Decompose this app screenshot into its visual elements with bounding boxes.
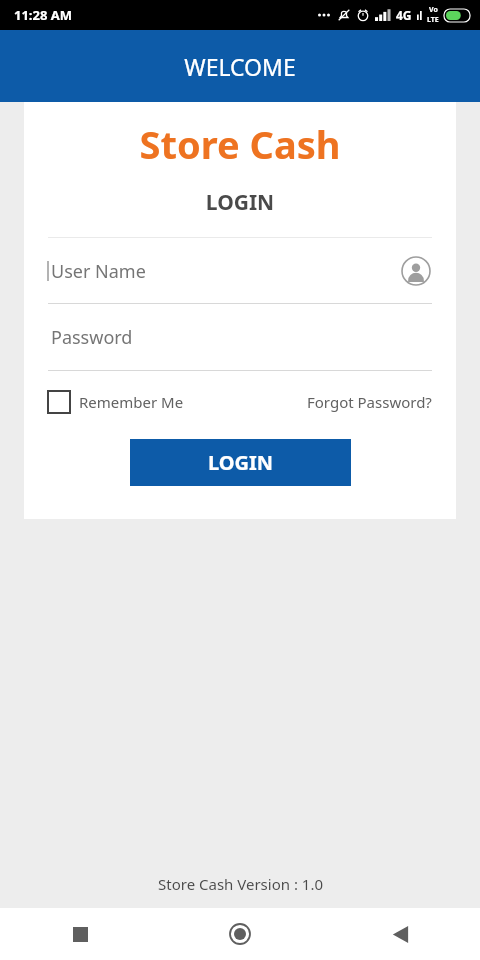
staticText: LTE xyxy=(427,15,439,25)
staticText: Password xyxy=(51,325,133,350)
button[interactable]: Home xyxy=(160,908,320,960)
staticText: User Name xyxy=(51,259,146,284)
staticText: Remember Me xyxy=(79,392,184,412)
staticText: Forgot Password? xyxy=(307,392,432,412)
button[interactable]: User Name xyxy=(48,238,432,304)
button[interactable]: Password xyxy=(48,304,432,371)
staticText: 11:28 AM xyxy=(14,6,73,24)
staticText: LOGIN xyxy=(24,188,456,217)
staticText: WELCOME xyxy=(184,51,296,82)
button[interactable]: Recent apps xyxy=(0,908,160,960)
staticText: Store Cash Version : 1.0 xyxy=(158,874,323,894)
staticText: Vo xyxy=(429,5,438,15)
staticText: Store Cash xyxy=(24,118,456,170)
button[interactable]: Back xyxy=(320,908,480,960)
other: Account xyxy=(400,255,432,287)
button[interactable]: Remember Me xyxy=(48,387,184,417)
button[interactable]: Forgot Password? xyxy=(307,388,432,416)
staticText: LOGIN xyxy=(208,449,274,476)
staticText: 4G xyxy=(396,7,412,23)
button[interactable]: LOGIN xyxy=(130,439,351,486)
